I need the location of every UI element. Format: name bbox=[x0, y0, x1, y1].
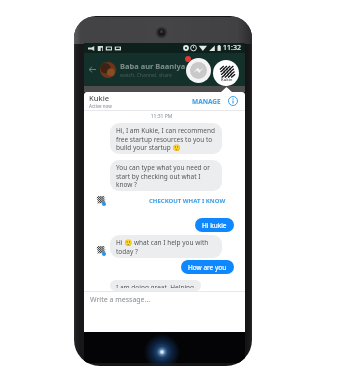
button[interactable]: CHECKOUT WHAT I KNOW bbox=[149, 197, 226, 205]
button[interactable]: Messenger chat head bbox=[186, 58, 211, 83]
button[interactable]: Hi, I am Kukie, I can recommend free sta… bbox=[110, 123, 222, 154]
button[interactable]: Hi kukie bbox=[195, 218, 234, 232]
staticText: Hi kukie bbox=[202, 221, 227, 230]
staticText: You can type what you need or start by c… bbox=[116, 163, 216, 188]
button[interactable]: Back bbox=[86, 63, 99, 76]
staticText: 11:32 bbox=[223, 43, 241, 53]
staticText: I am doing great. Helping bbox=[116, 283, 195, 288]
button[interactable]: Kukie chat head bbox=[213, 60, 239, 86]
button[interactable]: I am doing great. Helping bbox=[110, 280, 201, 291]
button[interactable]: Info bbox=[228, 96, 238, 106]
button[interactable]: How are you bbox=[181, 260, 234, 274]
staticText: 11:31 PM bbox=[89, 113, 234, 120]
staticText: Baba aur Baaniya bbox=[120, 61, 186, 71]
staticText: watch, Channel, share bbox=[120, 72, 172, 79]
staticText: Active now bbox=[89, 103, 112, 109]
button[interactable]: MANAGE bbox=[192, 97, 221, 106]
staticText: Hi, I am Kukie, I can recommend free sta… bbox=[116, 126, 216, 151]
staticText: Kukie bbox=[89, 93, 109, 103]
staticText: How are you bbox=[188, 263, 227, 272]
staticText: Hi 🙂 what can I help you with today ? bbox=[116, 238, 216, 255]
button[interactable]: You can type what you need or start by c… bbox=[110, 160, 222, 191]
staticText: Kukie bbox=[221, 77, 233, 82]
staticText: Write a message... bbox=[90, 295, 151, 305]
button[interactable]: Hi 🙂 what can I help you with today ? bbox=[110, 235, 222, 258]
